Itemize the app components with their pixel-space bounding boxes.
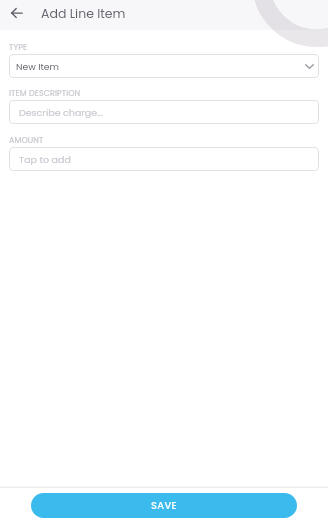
button[interactable]: SAVE — [31, 493, 297, 518]
button[interactable]: Tap to add — [9, 147, 319, 171]
button[interactable]: New Item — [9, 54, 319, 78]
staticText: ITEM DESCRIPTION — [9, 88, 81, 99]
staticText: AMOUNT — [9, 135, 44, 146]
staticText: Tap to add — [19, 153, 71, 166]
staticText: SAVE — [151, 499, 177, 513]
staticText: Describe charge... — [19, 106, 104, 119]
staticText: New Item — [16, 60, 59, 73]
button[interactable]: Back — [3, 0, 31, 26]
staticText: TYPE — [9, 42, 28, 53]
button[interactable]: Describe charge... — [9, 100, 319, 124]
staticText: Add Line Item — [41, 5, 126, 22]
